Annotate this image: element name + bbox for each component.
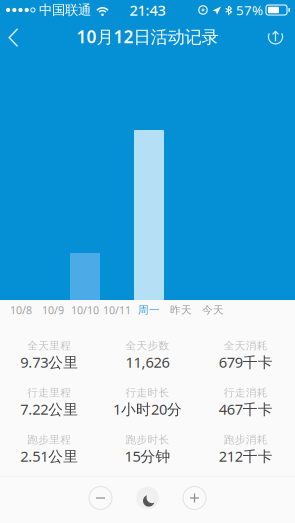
staticText: 中国联通 <box>39 2 91 18</box>
staticText: 2.51公里 <box>20 446 78 466</box>
button[interactable]: 10/10 <box>69 300 101 320</box>
staticText: 昨天 <box>170 303 192 316</box>
staticText: 10月12日活动记录 <box>76 25 218 48</box>
staticText: 行走里程 <box>27 386 71 399</box>
staticText: 1小时20分 <box>113 399 182 419</box>
button[interactable]: 10/9 <box>37 300 69 320</box>
button[interactable]: Back <box>0 20 42 53</box>
staticText: 全天消耗 <box>224 339 268 352</box>
button[interactable]: Sleep mode <box>132 483 162 513</box>
staticText: 10/9 <box>42 303 64 317</box>
staticText: 10/10 <box>71 303 99 317</box>
staticText: 11,626 <box>125 352 169 372</box>
staticText: 21:43 <box>129 0 165 20</box>
staticText: 全天步数 <box>125 339 169 352</box>
button[interactable]: Share <box>253 20 295 53</box>
staticText: 今天 <box>202 303 224 316</box>
button[interactable]: 10/8 <box>5 300 37 320</box>
staticText: 行走消耗 <box>224 386 268 399</box>
button[interactable]: 周一 <box>133 300 165 320</box>
staticText: 7.22公里 <box>20 399 78 419</box>
staticText: 跑步里程 <box>27 433 71 446</box>
staticText: 10/11 <box>103 303 131 317</box>
staticText: 10/8 <box>10 303 32 317</box>
staticText: 15分钟 <box>124 446 170 466</box>
staticText: 679千卡 <box>219 352 273 372</box>
staticText: 跑步时长 <box>125 433 169 446</box>
staticText: 行走时长 <box>125 386 169 399</box>
staticText: 跑步消耗 <box>224 433 268 446</box>
staticText: 9.73公里 <box>20 352 78 372</box>
button[interactable]: 昨天 <box>165 300 197 320</box>
button[interactable]: Decrease goal <box>85 483 115 513</box>
staticText: 周一 <box>138 303 160 316</box>
staticText: 467千卡 <box>219 399 273 419</box>
button[interactable]: 10/11 <box>101 300 133 320</box>
staticText: 57% <box>236 1 263 19</box>
button[interactable]: Increase goal <box>179 483 209 513</box>
button[interactable]: 今天 <box>197 300 229 320</box>
staticText: 全天里程 <box>27 339 71 352</box>
staticText: 212千卡 <box>219 446 273 466</box>
